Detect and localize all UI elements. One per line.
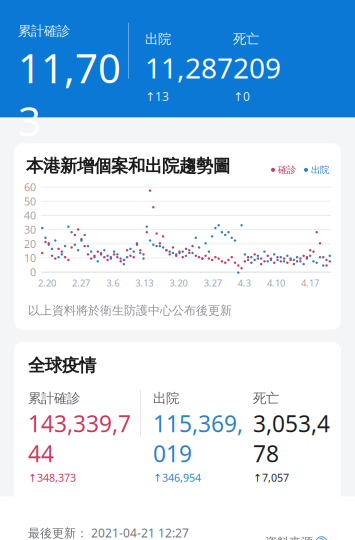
staticText: 4.10 bbox=[267, 277, 285, 289]
staticText: 60 bbox=[24, 180, 36, 194]
staticText: 40 bbox=[24, 208, 36, 223]
staticText: 最後更新： 2021-04-21 12:27 bbox=[28, 525, 189, 540]
staticText: 209 bbox=[233, 49, 281, 86]
staticText: 4.17 bbox=[301, 277, 319, 289]
staticText: 本港新增個案和出院趨勢圖 bbox=[26, 155, 230, 177]
staticText: ↑0 bbox=[233, 88, 250, 104]
staticText: 143,339,744 bbox=[28, 408, 131, 469]
staticText: 10 bbox=[24, 251, 36, 265]
staticText: 累計確診 bbox=[28, 390, 80, 406]
staticText: ↑13 bbox=[145, 88, 169, 104]
staticText: 30 bbox=[24, 222, 36, 237]
staticText: 2.20 bbox=[38, 277, 56, 289]
staticText: 以上資料將於衛生防護中心公布後更新 bbox=[28, 303, 232, 318]
staticText: 出院 bbox=[311, 164, 329, 176]
staticText: 死亡 bbox=[233, 31, 259, 47]
staticText: 出院 bbox=[145, 31, 171, 47]
staticText: 3,053,478 bbox=[253, 408, 330, 469]
staticText: 3.13 bbox=[135, 277, 153, 289]
staticText: 11,287 bbox=[145, 49, 233, 86]
staticText: 累計確診 bbox=[18, 23, 70, 39]
staticText: 2.27 bbox=[72, 277, 90, 289]
staticText: 3.27 bbox=[204, 277, 222, 289]
staticText: 3.6 bbox=[106, 277, 119, 289]
staticText: 3.20 bbox=[169, 277, 187, 289]
staticText: 20 bbox=[24, 237, 36, 251]
staticText: ↑346,954 bbox=[153, 471, 201, 485]
staticText: ↑348,373 bbox=[28, 471, 76, 485]
staticText: ↑8 bbox=[18, 149, 35, 165]
staticText: 115,369,019 bbox=[153, 408, 243, 469]
staticText: 死亡 bbox=[253, 390, 279, 406]
staticText: 11,703 bbox=[18, 41, 121, 147]
staticText: 0 bbox=[30, 265, 36, 279]
staticText: ↑7,057 bbox=[253, 471, 289, 485]
staticText: 全球疫情 bbox=[28, 355, 96, 376]
staticText: 資料來源 bbox=[265, 535, 313, 540]
staticText: 出院 bbox=[153, 390, 179, 406]
staticText: 確診 bbox=[278, 164, 296, 176]
staticText: ? bbox=[319, 535, 324, 540]
staticText: 4.3 bbox=[238, 277, 251, 289]
button[interactable]: 資料來源 bbox=[265, 531, 327, 540]
staticText: 50 bbox=[24, 194, 36, 208]
